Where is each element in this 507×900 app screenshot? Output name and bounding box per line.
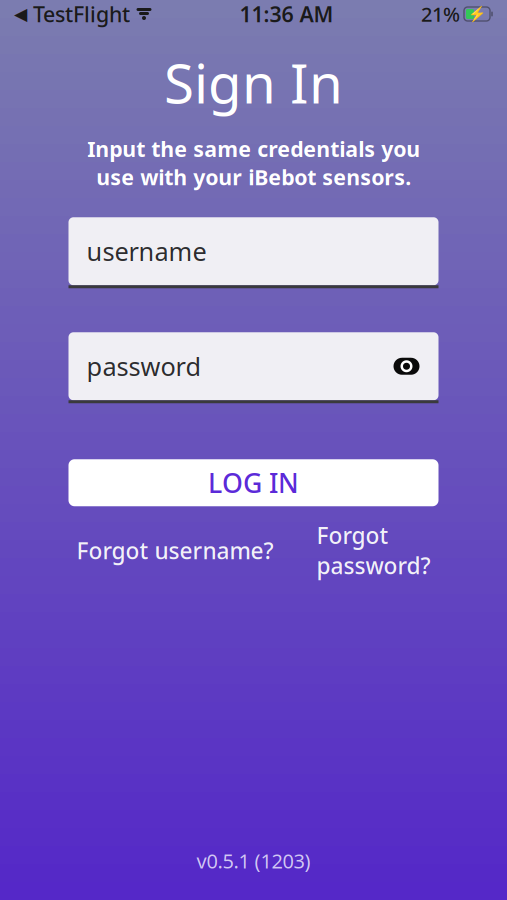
button[interactable]: username bbox=[68, 217, 438, 288]
staticText: 11:36 AM bbox=[239, 0, 333, 28]
staticText: Sign In bbox=[164, 46, 343, 119]
staticText: ◀ bbox=[14, 4, 27, 24]
staticText: Forgot username? bbox=[76, 535, 273, 565]
staticText: LOG IN bbox=[208, 465, 299, 500]
staticText: Input the same credentials you use with … bbox=[87, 135, 420, 191]
staticText: v0.5.1 (1203) bbox=[196, 847, 310, 874]
staticText: 21% bbox=[421, 1, 460, 27]
button[interactable]: Forgot password? bbox=[316, 520, 430, 580]
staticText: Forgot password? bbox=[316, 520, 430, 580]
button[interactable]: LOG IN bbox=[68, 459, 438, 506]
staticText: username bbox=[86, 234, 206, 268]
staticText: ⚡ bbox=[468, 6, 486, 22]
staticText: TestFlight bbox=[27, 0, 130, 28]
button[interactable]: Forgot username? bbox=[76, 535, 273, 565]
staticText: password bbox=[86, 349, 201, 383]
button[interactable]: password bbox=[68, 332, 438, 403]
